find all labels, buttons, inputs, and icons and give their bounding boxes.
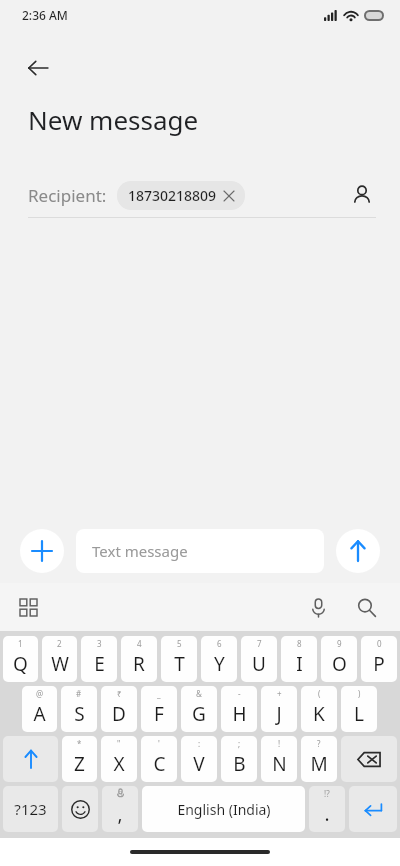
staticText: H xyxy=(232,701,247,727)
staticText: 0 xyxy=(377,638,382,649)
staticText: ? xyxy=(317,738,321,749)
button[interactable]: @ xyxy=(22,686,57,732)
staticText: 7 xyxy=(257,638,262,649)
staticText: " xyxy=(117,738,121,749)
staticText: : xyxy=(198,738,201,749)
staticText: ) xyxy=(358,688,361,699)
staticText: X xyxy=(113,751,125,777)
staticText: 18730218809 xyxy=(128,186,217,205)
staticText: ( xyxy=(318,688,321,699)
staticText: I xyxy=(296,651,303,677)
button[interactable]: 0 xyxy=(361,636,397,682)
staticText: * xyxy=(77,738,82,749)
button[interactable]: Contacts xyxy=(342,175,382,215)
staticText: 6 xyxy=(217,638,222,649)
staticText: # xyxy=(76,688,82,699)
staticText: . xyxy=(324,801,330,827)
staticText: L xyxy=(354,701,364,727)
staticText: , xyxy=(117,801,123,827)
staticText: P xyxy=(373,651,385,677)
staticText: K xyxy=(313,701,325,727)
button[interactable]: Keyboard options xyxy=(8,587,48,627)
staticText: J xyxy=(276,701,282,727)
button[interactable]: Shift xyxy=(3,736,58,782)
staticText: U xyxy=(252,651,266,677)
button[interactable]: 2 xyxy=(42,636,77,682)
button[interactable]: 1 xyxy=(3,636,38,682)
button[interactable]: Back xyxy=(14,44,62,92)
button[interactable]: Enter xyxy=(349,786,397,832)
button[interactable]: Voice input xyxy=(298,587,338,627)
staticText: ! xyxy=(278,738,281,749)
staticText: !? xyxy=(324,788,330,799)
button[interactable]: 4 xyxy=(121,636,157,682)
staticText: _ xyxy=(157,688,161,699)
staticText: B xyxy=(233,751,246,777)
staticText: S xyxy=(74,701,85,727)
staticText: A xyxy=(33,701,46,727)
staticText: G xyxy=(192,701,206,727)
staticText: & xyxy=(196,688,202,699)
button[interactable]: !? xyxy=(309,786,345,832)
button[interactable]: Backspace xyxy=(341,736,397,782)
button[interactable]: 18730218809 xyxy=(117,181,245,210)
button[interactable]:  xyxy=(102,786,138,832)
button[interactable]: 6 xyxy=(201,636,237,682)
button[interactable]: 5 xyxy=(161,636,197,682)
staticText: ' xyxy=(158,738,160,749)
button[interactable]: * xyxy=(62,736,97,782)
button[interactable]: + xyxy=(261,686,297,732)
staticText: F xyxy=(154,701,164,727)
button[interactable]: 7 xyxy=(241,636,277,682)
staticText: Text message xyxy=(92,541,188,561)
staticText: Z xyxy=(74,751,85,777)
button[interactable]: " xyxy=(101,736,137,782)
button[interactable]: ; xyxy=(221,736,257,782)
button[interactable]: ! xyxy=(261,736,297,782)
staticText: ?123 xyxy=(14,799,47,819)
staticText: 8 xyxy=(297,638,302,649)
staticText:  xyxy=(118,788,123,799)
staticText: 1 xyxy=(18,638,23,649)
staticText: - xyxy=(238,688,241,699)
staticText: 9 xyxy=(337,638,342,649)
button[interactable]: 3 xyxy=(81,636,117,682)
button[interactable]: 9 xyxy=(321,636,357,682)
button[interactable]: Search xyxy=(346,587,386,627)
staticText: Y xyxy=(214,651,225,677)
button[interactable]: Send xyxy=(336,529,380,573)
staticText: 5 xyxy=(177,638,182,649)
staticText: 2 xyxy=(57,638,62,649)
staticText: 4 xyxy=(137,638,142,649)
button[interactable]: # xyxy=(61,686,97,732)
staticText: D xyxy=(112,701,126,727)
staticText: ; xyxy=(238,738,241,749)
button[interactable]: Emoji xyxy=(62,786,98,832)
staticText: M xyxy=(310,751,328,777)
staticText: Recipient: xyxy=(28,184,107,207)
button[interactable]: ' xyxy=(141,736,177,782)
button[interactable]: ? xyxy=(301,736,337,782)
staticText: + xyxy=(277,688,282,699)
staticText: O xyxy=(332,651,347,677)
button[interactable]: 8 xyxy=(281,636,317,682)
staticText: New message xyxy=(28,102,199,137)
button[interactable]: ?123 xyxy=(3,786,58,832)
staticText: 2:36 AM xyxy=(22,7,68,23)
button[interactable]: & xyxy=(181,686,217,732)
staticText: 3 xyxy=(97,638,102,649)
button[interactable]: Text message xyxy=(76,529,324,573)
staticText: English (India) xyxy=(177,800,271,819)
button[interactable]: ) xyxy=(341,686,377,732)
button[interactable]: ( xyxy=(301,686,337,732)
staticText: T xyxy=(174,651,185,677)
staticText: Q xyxy=(13,651,28,677)
staticText: ₹ xyxy=(117,688,122,699)
staticText: V xyxy=(193,751,205,777)
button[interactable]: ₹ xyxy=(101,686,137,732)
button[interactable]: English (India) xyxy=(142,786,305,832)
button[interactable]: _ xyxy=(141,686,177,732)
button[interactable]: - xyxy=(221,686,257,732)
button[interactable]: Add attachment xyxy=(20,529,64,573)
button[interactable]: : xyxy=(181,736,217,782)
